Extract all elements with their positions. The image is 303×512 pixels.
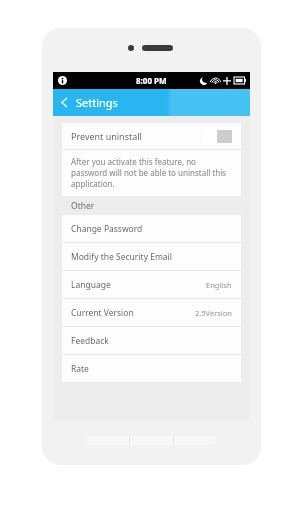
staticText: 8:00 PM	[136, 75, 167, 86]
staticText: Prevent uninstall	[71, 130, 142, 142]
staticText: Current Version	[71, 307, 134, 319]
button[interactable]: Language	[62, 271, 241, 298]
staticText: Feedback	[71, 335, 109, 347]
button[interactable]: Rate	[62, 355, 241, 382]
button[interactable]: Prevent uninstall	[62, 123, 241, 149]
button[interactable]: Feedback	[62, 327, 241, 354]
staticText: Language	[71, 279, 111, 291]
button[interactable]: Prevent uninstall toggle	[202, 130, 232, 143]
other: Back	[59, 97, 70, 108]
staticText: 2.5Version	[195, 308, 232, 318]
button[interactable]: Back	[53, 92, 126, 113]
button[interactable]: Current Version	[62, 299, 241, 326]
staticText: Rate	[71, 363, 89, 375]
staticText: After you activate this feature, no pass…	[71, 156, 232, 189]
staticText: English	[206, 280, 232, 290]
staticText: Other	[71, 200, 95, 212]
button[interactable]: Modify the Security Email	[62, 243, 241, 270]
staticText: Change Password	[71, 223, 143, 235]
staticText: Settings	[76, 95, 118, 110]
button[interactable]: Change Password	[62, 215, 241, 242]
staticText: Modify the Security Email	[71, 251, 173, 263]
